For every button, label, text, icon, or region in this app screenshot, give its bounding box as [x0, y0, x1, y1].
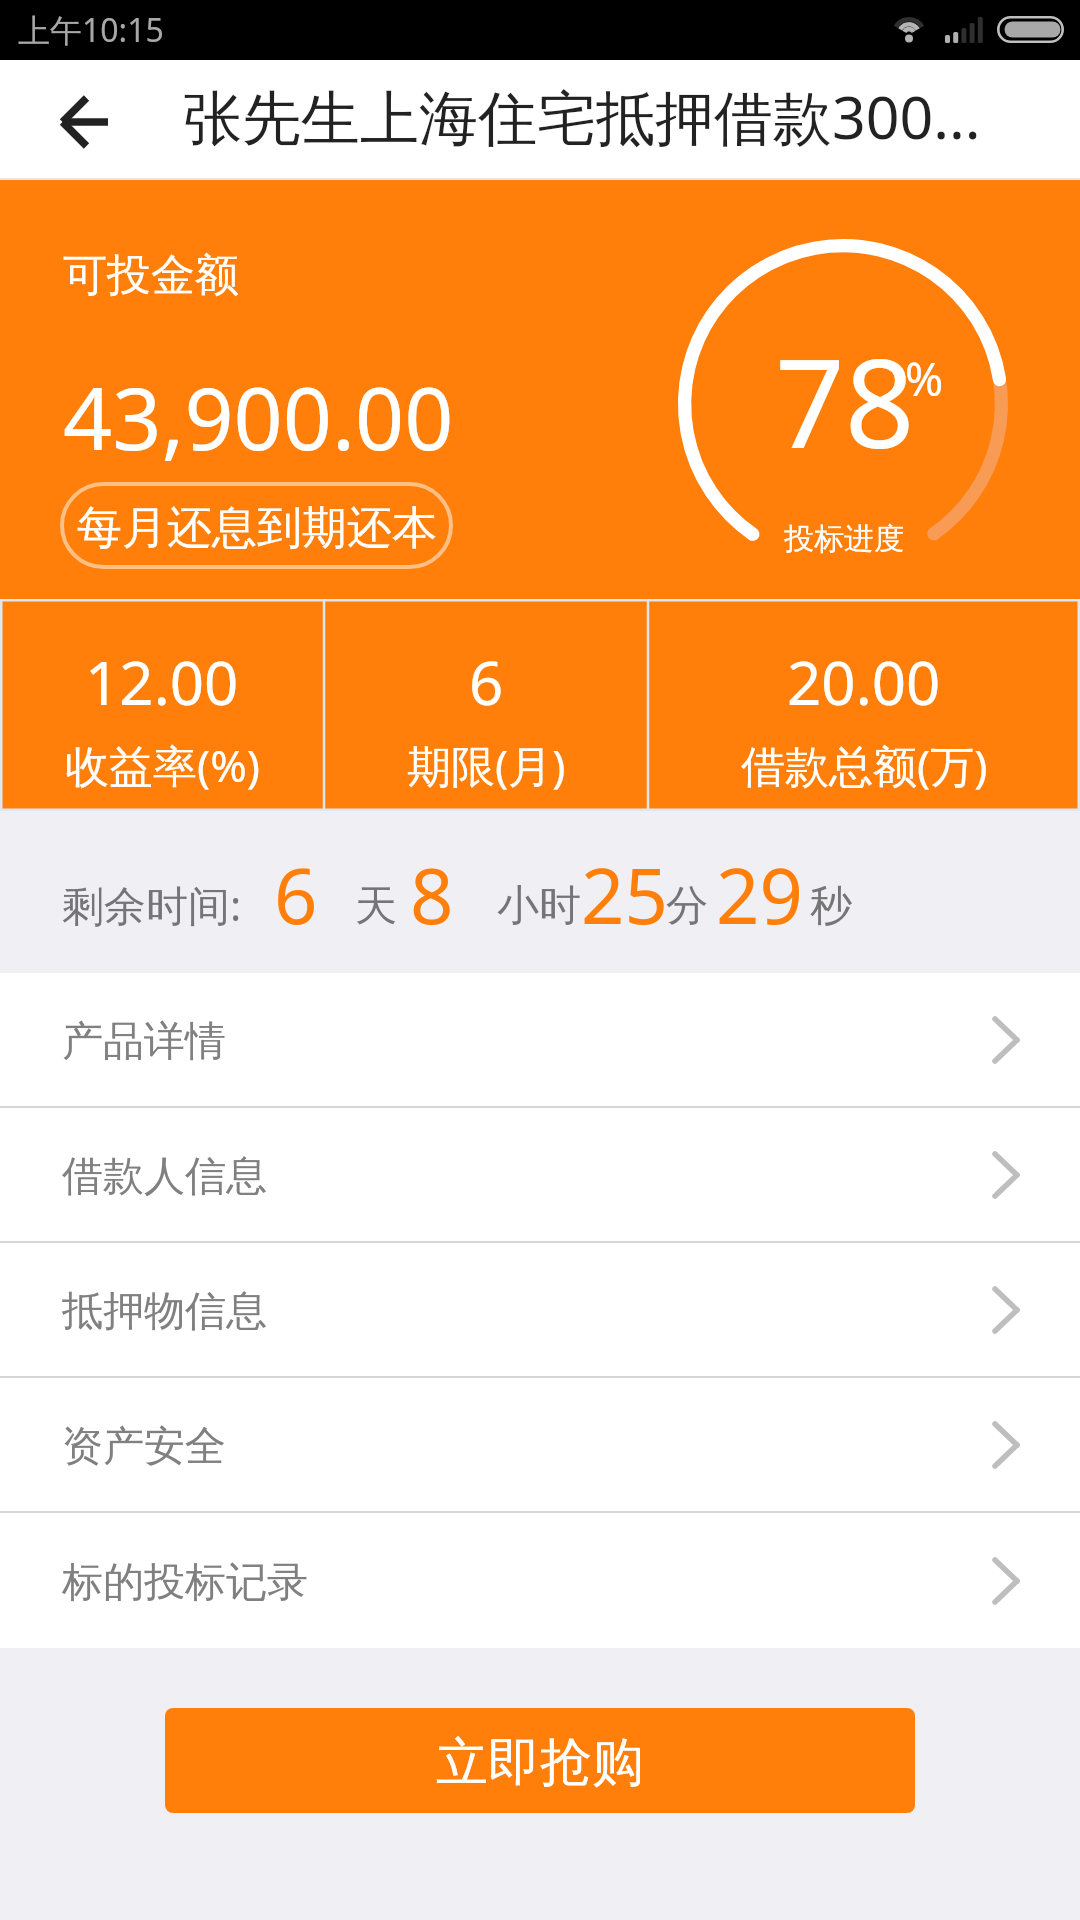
- button[interactable]: 借款人信息: [0, 1108, 1080, 1241]
- staticText: 上午10:15: [18, 8, 164, 52]
- staticText: 分: [666, 880, 708, 933]
- staticText: 抵押物信息: [62, 1286, 267, 1338]
- staticText: 资产安全: [62, 1421, 226, 1473]
- staticText: 期限(月): [407, 735, 566, 795]
- staticText: 29: [716, 843, 803, 947]
- staticText: 借款人信息: [62, 1151, 267, 1203]
- staticText: 每月还息到期还本: [77, 500, 437, 557]
- staticText: 43,900.00: [63, 358, 454, 475]
- staticText: 78: [775, 318, 915, 484]
- staticText: 6: [469, 641, 504, 723]
- staticText: %: [905, 347, 944, 410]
- button[interactable]: 标的投标记录: [0, 1513, 1080, 1648]
- staticText: 标的投标记录: [62, 1557, 308, 1609]
- button[interactable]: 资产安全: [0, 1378, 1080, 1511]
- staticText: 可投金额: [63, 248, 239, 303]
- staticText: 剩余时间:: [62, 876, 242, 933]
- staticText: 小时: [497, 880, 581, 933]
- staticText: 12.00: [85, 641, 239, 723]
- button[interactable]: Back: [0, 60, 168, 178]
- button[interactable]: 产品详情: [0, 973, 1080, 1106]
- staticText: 6: [274, 843, 318, 947]
- staticText: 张先生上海住宅抵押借款300...: [183, 76, 981, 157]
- staticText: 产品详情: [62, 1016, 226, 1068]
- staticText: 25: [581, 843, 668, 947]
- staticText: 20.00: [787, 641, 941, 723]
- staticText: 天: [355, 880, 397, 933]
- staticText: 立即抢购: [436, 1730, 644, 1796]
- staticText: 秒: [810, 880, 852, 933]
- button[interactable]: 抵押物信息: [0, 1243, 1080, 1376]
- button[interactable]: 立即抢购: [165, 1708, 915, 1813]
- staticText: 8: [410, 843, 454, 947]
- staticText: 收益率(%): [65, 735, 260, 795]
- staticText: 投标进度: [784, 520, 904, 558]
- staticText: 借款总额(万): [741, 735, 988, 795]
